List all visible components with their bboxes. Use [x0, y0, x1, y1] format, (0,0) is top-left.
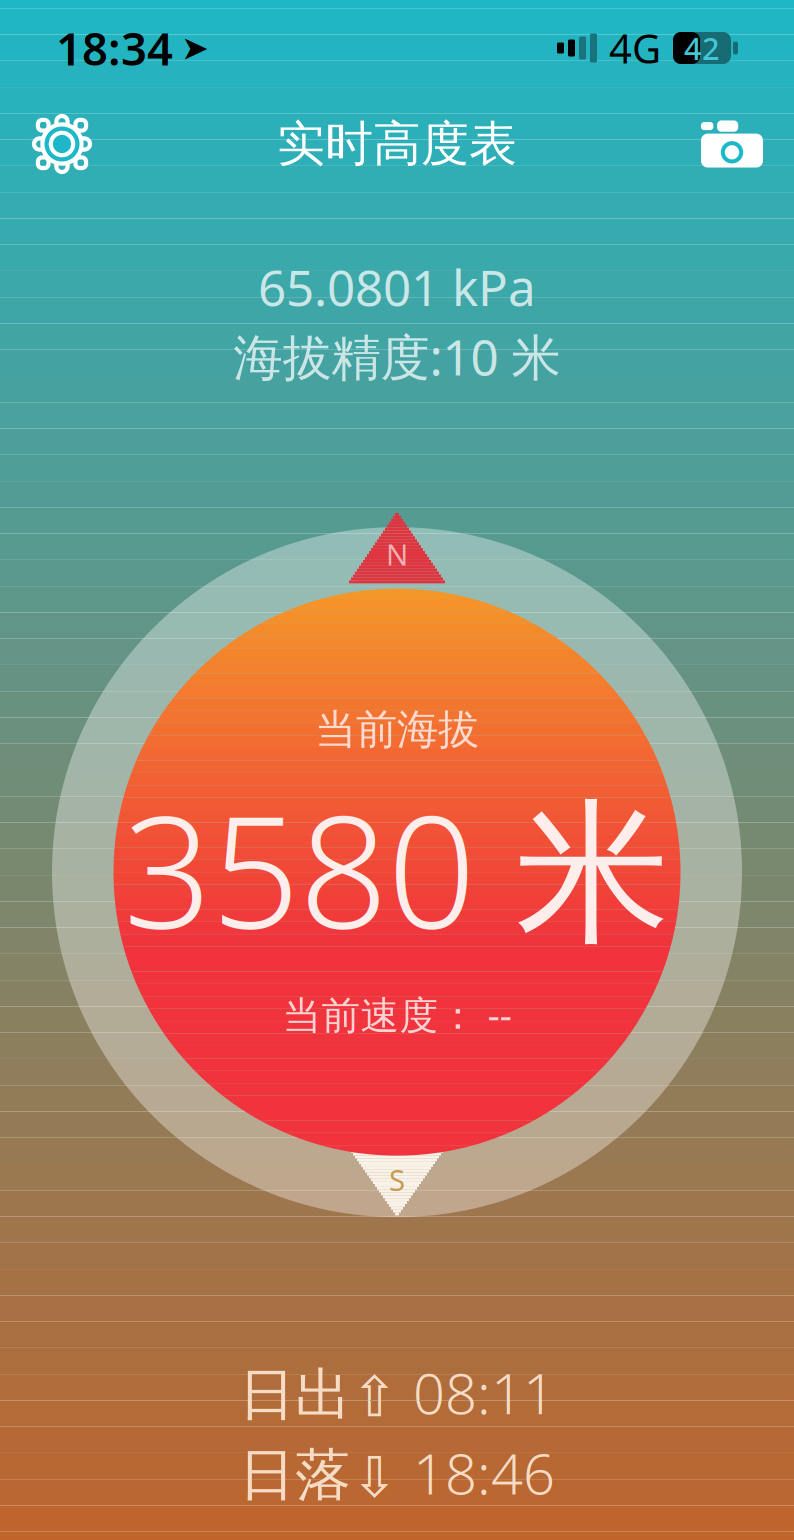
staticText: ➤	[181, 29, 209, 67]
staticText: 18:34	[56, 18, 173, 78]
staticText: 65.0801 kPa	[258, 254, 536, 319]
staticText: 3580 米	[123, 765, 670, 971]
staticText: 当前海拔	[315, 704, 479, 755]
staticText: 当前速度： --	[282, 989, 511, 1040]
staticText: 日落⇩ 18:46	[239, 1436, 555, 1510]
staticText: 日出⇧ 08:11	[239, 1355, 555, 1430]
staticText: 实时高度表	[277, 114, 517, 173]
staticText: 4G	[609, 21, 661, 74]
button[interactable]: Camera	[684, 96, 780, 192]
button[interactable]: Settings	[14, 96, 110, 192]
staticText: N	[386, 535, 408, 574]
staticText: 42	[684, 28, 720, 68]
staticText: 海拔精度:10 米	[233, 323, 560, 389]
staticText: S	[389, 1160, 405, 1199]
